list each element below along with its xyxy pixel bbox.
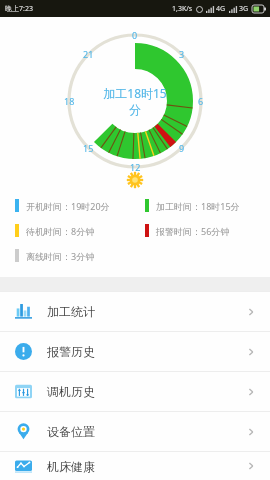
staticText: 加工时间：18时15分 (156, 200, 240, 212)
staticText: 报警时间：56分钟 (156, 225, 230, 237)
other: 机床健康 (15, 458, 32, 475)
button[interactable]: 设备位置 (0, 412, 270, 451)
button[interactable]: 加工统计 (0, 292, 270, 331)
other: 设备位置 (15, 423, 32, 440)
staticText: 12 (130, 161, 141, 173)
staticText: 加工统计 (47, 304, 95, 319)
staticText: 待机时间：8分钟 (26, 225, 95, 237)
staticText: 18 (64, 95, 75, 107)
other: 报警历史 (15, 343, 32, 360)
staticText: 21 (83, 48, 94, 60)
button[interactable]: 调机历史 (0, 372, 270, 411)
button[interactable]: 报警历史 (0, 332, 270, 371)
other: 加工统计 (15, 303, 32, 320)
staticText: 开机时间：19时20分 (26, 200, 110, 212)
staticText: 1,3K/s (172, 4, 193, 14)
staticText: 3G (239, 4, 249, 14)
staticText: 设备位置 (47, 424, 95, 439)
staticText: 晚上7:23 (5, 4, 33, 14)
staticText: 加工18时15分 (98, 85, 172, 118)
staticText: 9 (179, 142, 185, 154)
other: 调机历史 (15, 383, 32, 400)
staticText: 报警历史 (47, 344, 95, 359)
staticText: 4G (216, 4, 226, 14)
staticText: 0 (132, 29, 138, 41)
staticText: 机床健康 (47, 459, 95, 474)
staticText: 3 (179, 48, 185, 60)
staticText: 6 (198, 95, 204, 107)
staticText: 离线时间：3分钟 (26, 250, 95, 262)
staticText: 调机历史 (47, 384, 95, 399)
button[interactable]: 机床健康 (0, 452, 270, 480)
staticText: 15 (83, 142, 94, 154)
